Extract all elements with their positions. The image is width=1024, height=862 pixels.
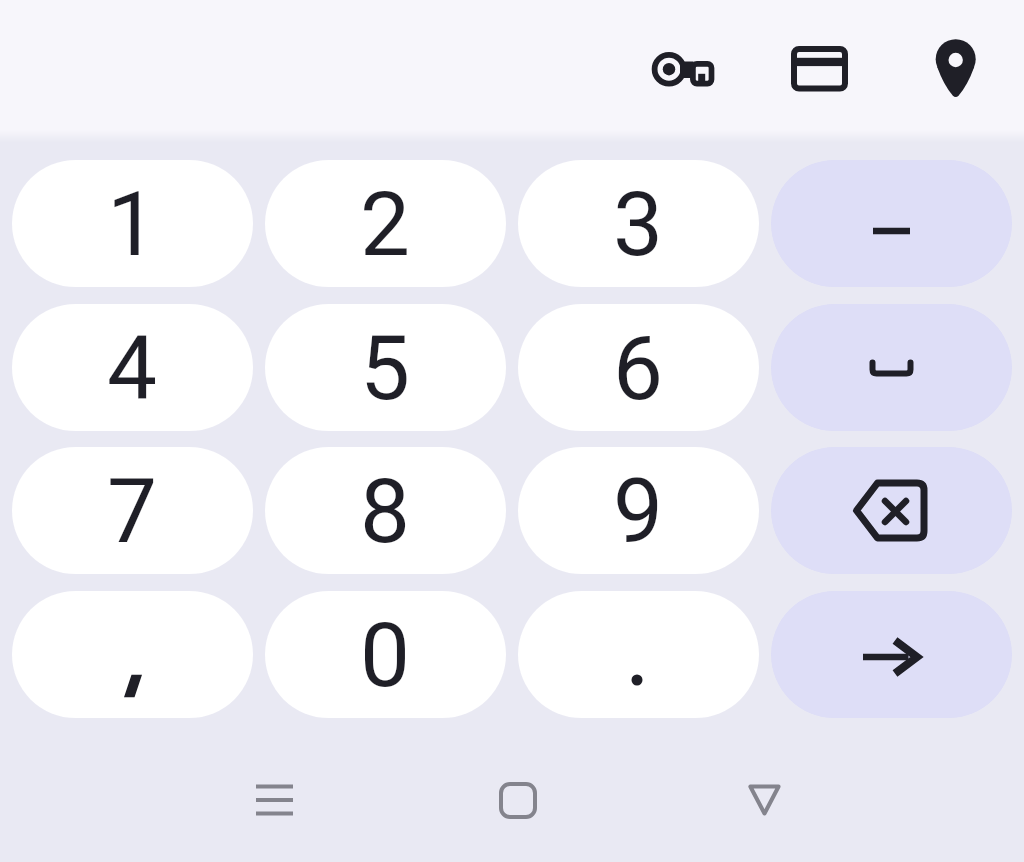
button[interactable]: [771, 304, 1012, 431]
staticText: 4: [107, 316, 158, 420]
button[interactable]: [648, 35, 716, 103]
button[interactable]: 5: [265, 304, 506, 431]
staticText: 6: [613, 316, 664, 420]
button[interactable]: [771, 591, 1012, 718]
button[interactable]: 0: [265, 591, 506, 718]
staticText: 7: [107, 459, 158, 563]
button[interactable]: 1: [12, 160, 253, 287]
staticText: 3: [613, 172, 664, 276]
button[interactable]: [922, 30, 990, 102]
button[interactable]: [736, 772, 792, 828]
staticText: 9: [613, 459, 664, 563]
button[interactable]: 2: [265, 160, 506, 287]
staticText: 0: [360, 603, 411, 707]
button[interactable]: [518, 591, 759, 718]
button[interactable]: [771, 160, 1012, 287]
button[interactable]: [247, 772, 303, 828]
button[interactable]: [490, 772, 546, 828]
button[interactable]: 7: [12, 447, 253, 574]
button[interactable]: [12, 591, 253, 718]
staticText: 5: [360, 316, 411, 420]
button[interactable]: 6: [518, 304, 759, 431]
staticText: 8: [360, 459, 411, 563]
staticText: 2: [360, 172, 411, 276]
button[interactable]: [785, 35, 853, 103]
button[interactable]: 9: [518, 447, 759, 574]
staticText: 1: [107, 172, 158, 276]
button[interactable]: 8: [265, 447, 506, 574]
button[interactable]: [771, 447, 1012, 574]
button[interactable]: 3: [518, 160, 759, 287]
button[interactable]: 4: [12, 304, 253, 431]
